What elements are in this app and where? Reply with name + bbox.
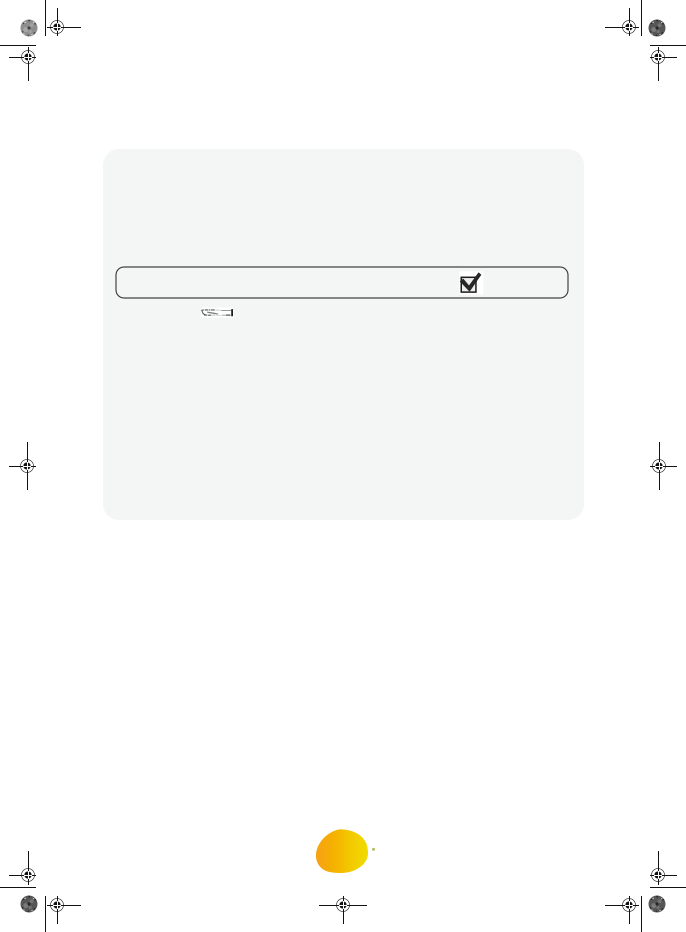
- button[interactable]: Confirm: [116, 267, 568, 298]
